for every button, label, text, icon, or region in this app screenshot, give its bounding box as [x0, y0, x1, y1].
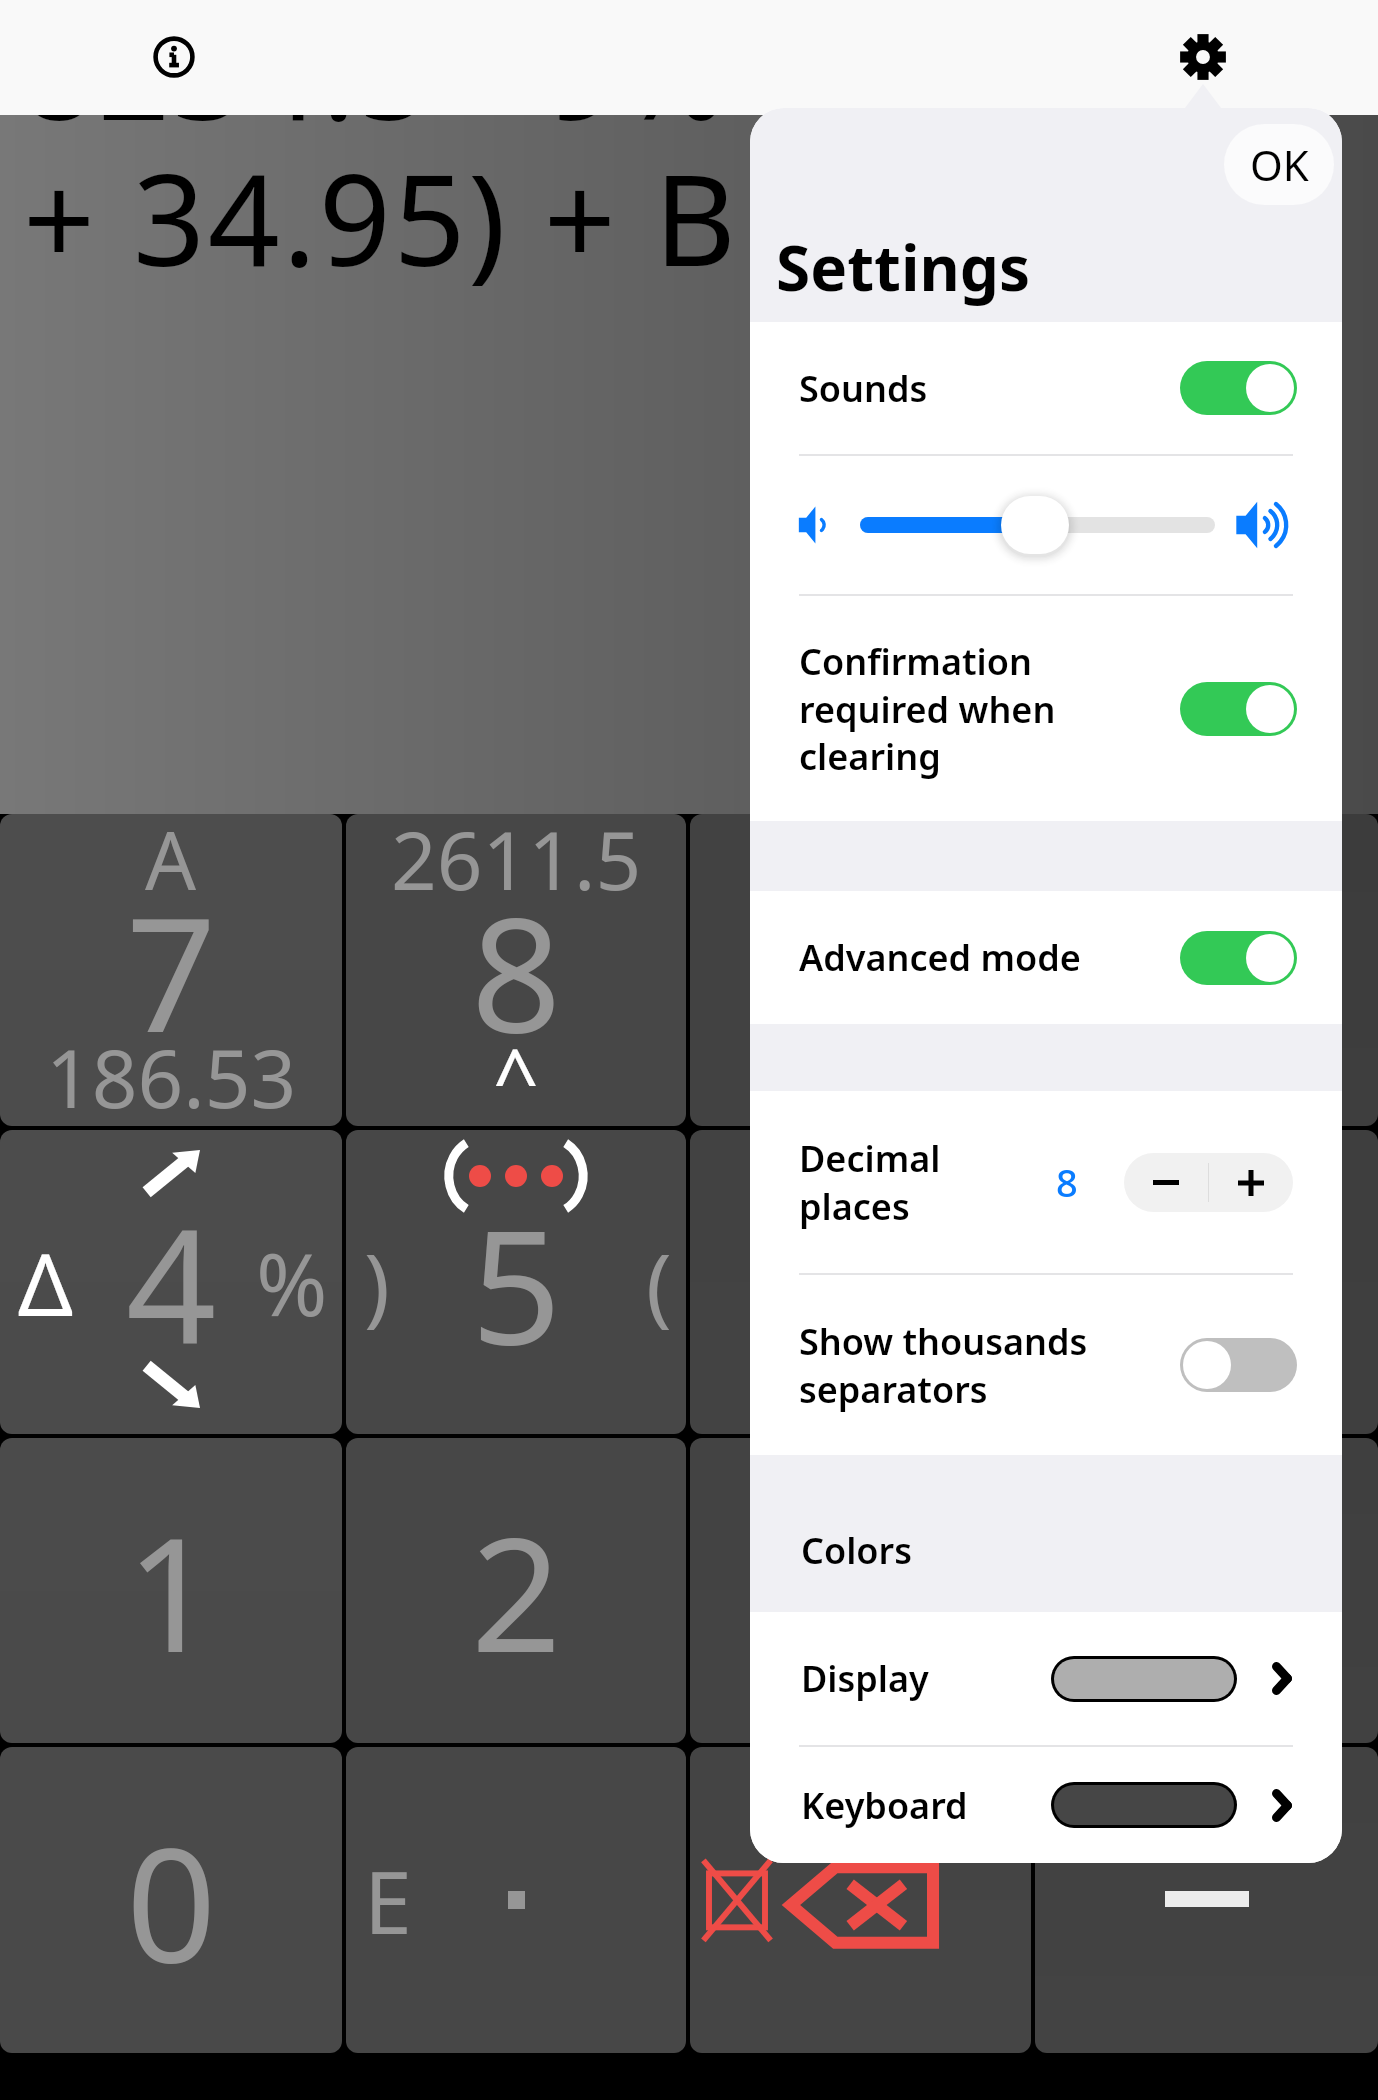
button[interactable]: Settings	[1167, 21, 1239, 93]
button[interactable]: 4	[0, 1130, 342, 1434]
staticText: 5	[471, 1175, 562, 1390]
staticText: 2	[471, 1483, 562, 1698]
button[interactable]: Keyboard	[750, 1747, 1342, 1863]
button[interactable]: Show thousands separators	[750, 1275, 1342, 1455]
button[interactable]: 2	[346, 1438, 686, 1743]
button[interactable]: Volume	[750, 456, 1342, 594]
staticText: 8	[471, 863, 562, 1078]
staticText: 6	[815, 1175, 906, 1390]
staticText: Δ	[18, 1224, 73, 1341]
staticText: 2611.5	[391, 814, 642, 913]
staticText: -	[1181, 1483, 1232, 1698]
staticText: 9	[815, 863, 906, 1078]
staticText: ^	[493, 1022, 539, 1126]
staticText: Sounds	[799, 364, 1156, 413]
staticText: 1	[126, 1483, 217, 1698]
button[interactable]: 8	[346, 814, 686, 1126]
staticText: Colors	[801, 1526, 912, 1575]
staticText: %	[256, 1224, 328, 1341]
staticText: Decimal places	[799, 1134, 959, 1230]
staticText: 8	[1056, 1156, 1078, 1208]
staticText: Settings	[776, 225, 1031, 309]
staticText: 0	[126, 1793, 217, 2008]
button[interactable]: Backspace	[690, 1747, 1031, 2053]
staticText: C	[835, 814, 886, 913]
button[interactable]: 7	[0, 814, 342, 1126]
button[interactable]: Decrease decimal places	[1124, 1153, 1208, 1212]
staticText: Keyboard	[801, 1781, 968, 1830]
button[interactable]: 9	[690, 814, 1031, 1126]
button[interactable]: 6	[690, 1130, 1031, 1434]
staticText: 4	[126, 1175, 217, 1390]
staticText: Confirmation required when clearing	[799, 637, 1156, 780]
button[interactable]: Increase decimal places	[1209, 1153, 1293, 1212]
staticText: /	[1177, 863, 1236, 1078]
staticText: *	[1163, 1175, 1251, 1390]
staticText: 186.53	[46, 1022, 297, 1126]
button[interactable]: Advanced mode	[750, 891, 1342, 1024]
button[interactable]: /	[1035, 814, 1378, 1126]
staticText: 7	[126, 863, 217, 1078]
staticText: Advanced mode	[799, 933, 1156, 982]
button[interactable]: OK	[1224, 124, 1334, 205]
staticText: Show thousands separators	[799, 1317, 1156, 1413]
staticText: OK	[1250, 136, 1309, 193]
button[interactable]: Sounds	[750, 322, 1342, 454]
button[interactable]: -	[1035, 1438, 1378, 1743]
button[interactable]: E	[346, 1747, 686, 2053]
staticText: 8234.5 - 9% + 34.95) + B	[23, 0, 739, 303]
button[interactable]: 3	[690, 1438, 1031, 1743]
staticText: A	[145, 814, 197, 913]
button[interactable]: Minus	[1035, 1747, 1378, 2053]
staticText: 3	[815, 1483, 906, 1698]
staticText: E	[364, 1842, 412, 1959]
button[interactable]: Confirmation required when clearing	[750, 596, 1342, 821]
button[interactable]: 1	[0, 1438, 342, 1743]
staticText: )	[364, 1224, 390, 1341]
button[interactable]: *	[1035, 1130, 1378, 1434]
staticText: Display	[801, 1654, 929, 1703]
button[interactable]: Info	[138, 21, 210, 93]
button[interactable]: 5	[346, 1130, 686, 1434]
staticText: (	[646, 1224, 672, 1341]
button[interactable]: 0	[0, 1747, 342, 2053]
button[interactable]: Display	[750, 1612, 1342, 1745]
